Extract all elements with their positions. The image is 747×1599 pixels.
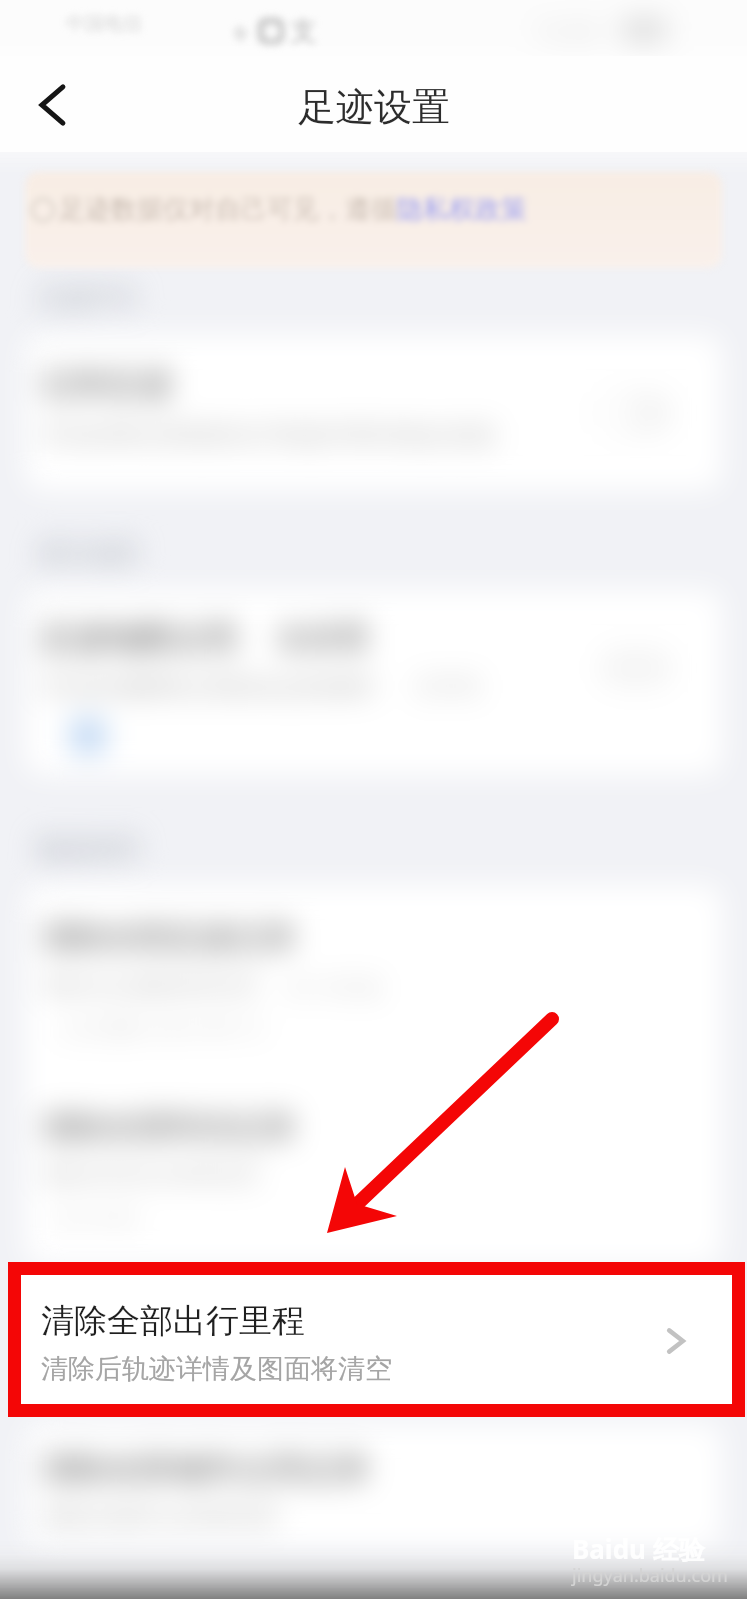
staticText: 清除后轨迹详情及图面将清空 <box>41 1352 392 1386</box>
button[interactable]: 清除全部足迹记录 <box>25 885 722 1075</box>
staticText: 清除全部足迹记录 <box>40 917 296 957</box>
staticText: 足迹地图点亮 <box>40 617 238 657</box>
button[interactable]: 记录足迹 <box>25 335 722 490</box>
staticText: 足迹设置 <box>298 83 450 131</box>
staticText: Baidu 经验 <box>572 1531 705 1567</box>
button[interactable]: Back <box>16 69 88 141</box>
staticText: 中国电信 <box>66 12 142 36</box>
staticText: 去设置 <box>276 618 369 657</box>
staticText: 足迹数据仅对自己可见，遵循 <box>59 193 397 226</box>
staticText: jingyan.baidu.com <box>572 1563 728 1588</box>
button[interactable]: 足迹地图点亮 <box>25 590 722 775</box>
staticText: 隐私权政策 <box>397 193 527 226</box>
button[interactable]: 清除全部出行里程 <box>19 1272 734 1409</box>
staticText: 记录足迹 <box>40 363 172 403</box>
staticText: 清除全部城市点亮记录 <box>40 1448 370 1488</box>
staticText: 清除全部出行里程 <box>41 1300 305 1342</box>
button[interactable]: 清除全部城市点亮记录 <box>25 1424 722 1548</box>
staticText: 支 <box>290 14 317 48</box>
button[interactable]: 清除全部到访记录 <box>25 1075 722 1265</box>
staticText: 清除全部到访记录 <box>40 1107 296 1147</box>
